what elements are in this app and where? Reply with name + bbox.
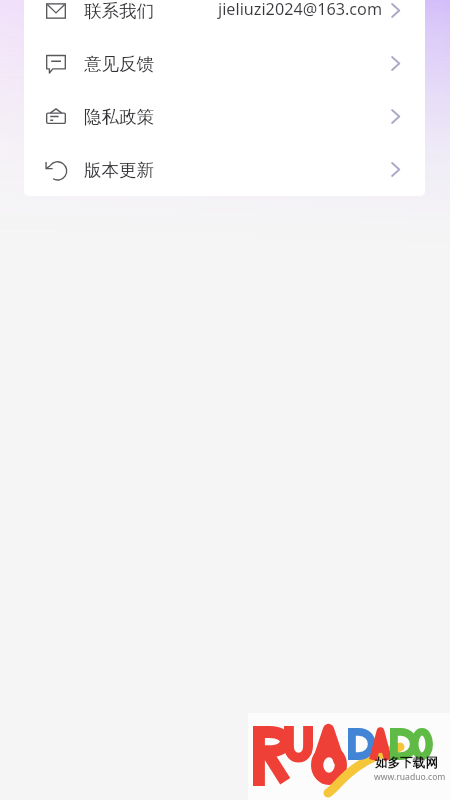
staticText: 隐私政策 [84,106,154,128]
staticText: 如多下载网 [375,755,438,771]
other: 联系我们 [46,1,66,21]
other: 隐私政策 [46,107,66,127]
other: Open 联系我们 [391,3,400,18]
other: Open 隐私政策 [391,109,400,124]
button[interactable]: 意见反馈 [24,37,425,90]
button[interactable]: 版本更新 [24,143,425,196]
staticText: www.ruaduo.com [374,771,446,783]
other: Open 版本更新 [391,162,400,177]
other: 意见反馈 [46,54,66,74]
staticText: 联系我们 [84,0,154,22]
staticText: jieliuzi2024@163.com [218,0,383,20]
staticText: 意见反馈 [84,53,154,75]
button[interactable]: 隐私政策 [24,90,425,143]
button[interactable]: 联系我们 [24,0,425,37]
other: Open 意见反馈 [391,56,400,71]
staticText: 版本更新 [84,159,154,181]
other: 版本更新 [46,160,66,180]
